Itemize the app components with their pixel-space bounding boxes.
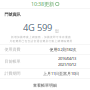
staticText: 型 [55, 29, 59, 34]
staticText: 計費期間 [4, 71, 20, 76]
staticText: 2021/10/12 [58, 62, 76, 67]
staticText: 新增加購專案上網服務，加購後即可享有優惠 [11, 35, 71, 39]
staticText: 10:38更新 [31, 0, 54, 8]
staticText: 查看帳單明細 [33, 83, 57, 88]
staticText: 門號資訊 [4, 12, 20, 17]
staticText: 目前帳單 [4, 59, 20, 64]
staticText: 使用資費 [4, 47, 20, 52]
staticText: 使用0.2則182次 [49, 47, 76, 52]
staticText: 月租費用已包含語音通信費及行動上網傳輸費用 [9, 39, 72, 43]
staticText: 4G 599 [23, 21, 52, 34]
button[interactable]: 查看帳單明細 [0, 81, 90, 90]
staticText: 上月11日至當月10日 [43, 71, 79, 76]
staticText: 2016/04/13 [58, 56, 76, 61]
button[interactable]: 10:38更新 [0, 0, 90, 8]
